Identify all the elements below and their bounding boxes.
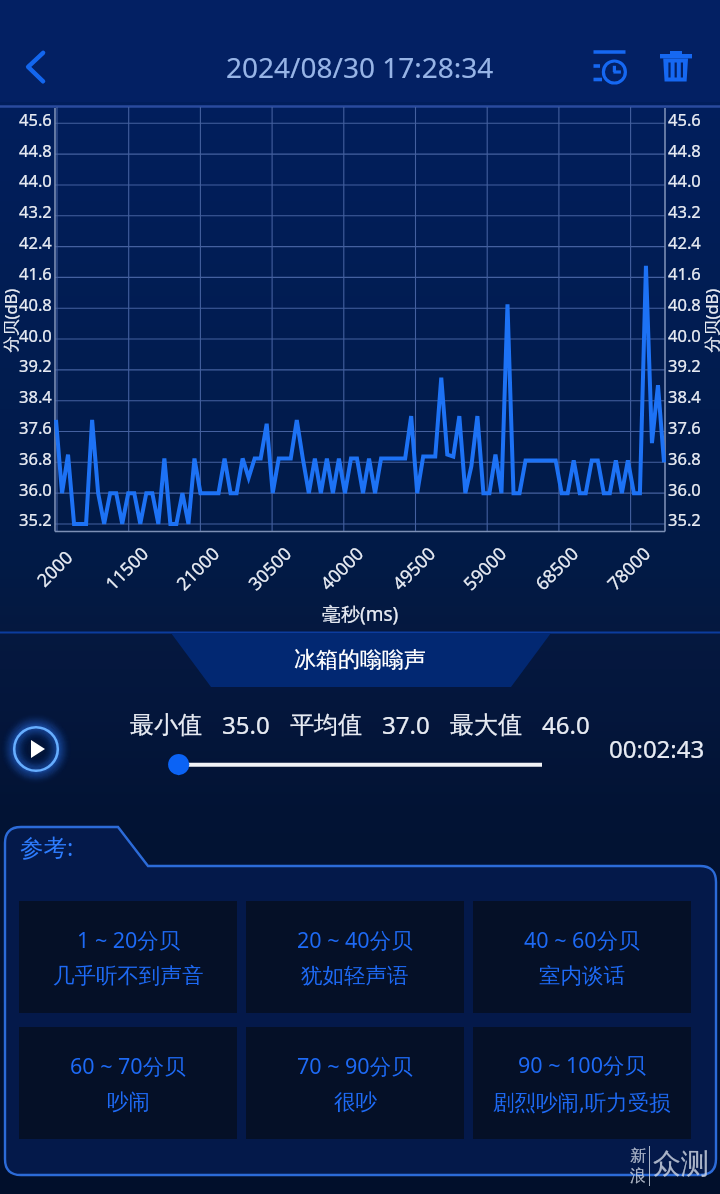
- button[interactable]: Play: [13, 725, 59, 771]
- staticText: 毫秒(ms): [322, 601, 399, 627]
- staticText: 35.0: [222, 708, 270, 741]
- staticText: 40 ~ 60分贝: [524, 925, 640, 954]
- staticText: 60 ~ 70分贝: [70, 1051, 186, 1080]
- button[interactable]: 40 ~ 60分贝: [473, 901, 691, 1013]
- staticText: 43.2: [19, 200, 52, 222]
- staticText: 2024/08/30 17:28:34: [226, 48, 494, 86]
- staticText: 39.2: [668, 354, 701, 376]
- button[interactable]: 20 ~ 40分贝: [246, 901, 464, 1013]
- staticText: 41.6: [668, 262, 701, 284]
- staticText: 44.0: [19, 169, 52, 191]
- staticText: 46.0: [542, 708, 590, 741]
- staticText: 49500: [387, 541, 441, 596]
- button[interactable]: Back: [8, 39, 64, 95]
- staticText: 44.8: [668, 139, 701, 161]
- button[interactable]: 1 ~ 20分贝: [19, 901, 237, 1013]
- staticText: 38.4: [19, 385, 52, 407]
- staticText: 36.0: [668, 478, 701, 500]
- button[interactable]: 60 ~ 70分贝: [19, 1027, 237, 1139]
- staticText: 犹如轻声语: [301, 962, 409, 989]
- staticText: 41.6: [19, 262, 52, 284]
- staticText: 30500: [243, 541, 297, 596]
- staticText: 78000: [602, 541, 656, 596]
- staticText: 吵闹: [107, 1088, 150, 1115]
- staticText: 11500: [100, 541, 154, 596]
- staticText: 90 ~ 100分贝: [518, 1050, 646, 1079]
- staticText: 36.0: [19, 478, 52, 500]
- staticText: 37.6: [668, 416, 701, 438]
- staticText: 2000: [31, 545, 79, 592]
- staticText: 40.8: [19, 293, 52, 315]
- staticText: 最小值: [130, 710, 202, 740]
- staticText: 40.0: [668, 324, 701, 346]
- staticText: 42.4: [668, 231, 701, 253]
- staticText: 39.2: [19, 354, 52, 376]
- staticText: 室内谈话: [539, 962, 625, 989]
- staticText: 00:02:43: [609, 732, 705, 765]
- staticText: 40.0: [19, 324, 52, 346]
- staticText: 70 ~ 90分贝: [297, 1051, 413, 1080]
- staticText: 43.2: [668, 200, 701, 222]
- staticText: 浪: [630, 1166, 646, 1186]
- button[interactable]: Delete: [645, 35, 707, 97]
- staticText: 45.6: [19, 108, 52, 130]
- staticText: 平均值: [290, 710, 362, 740]
- staticText: 几乎听不到声音: [53, 962, 204, 989]
- staticText: 20 ~ 40分贝: [297, 925, 413, 954]
- button[interactable]: 70 ~ 90分贝: [246, 1027, 464, 1139]
- staticText: 1 ~ 20分贝: [77, 925, 181, 954]
- staticText: 37.0: [382, 708, 430, 741]
- staticText: 新: [630, 1146, 646, 1166]
- staticText: 21000: [171, 541, 225, 596]
- staticText: 37.6: [19, 416, 52, 438]
- staticText: 44.8: [19, 139, 52, 161]
- staticText: 剧烈吵闹,听力受损: [493, 1087, 671, 1116]
- staticText: 最大值: [450, 710, 522, 740]
- staticText: 38.4: [668, 385, 701, 407]
- button[interactable]: 90 ~ 100分贝: [473, 1027, 691, 1139]
- staticText: 45.6: [668, 108, 701, 130]
- staticText: 分贝(dB): [699, 288, 720, 352]
- staticText: 冰箱的嗡嗡声: [294, 646, 426, 674]
- staticText: 42.4: [19, 231, 52, 253]
- staticText: 40.8: [668, 293, 701, 315]
- staticText: 40000: [315, 541, 369, 596]
- staticText: 44.0: [668, 169, 701, 191]
- staticText: 36.8: [668, 447, 701, 469]
- staticText: 35.2: [19, 508, 52, 530]
- staticText: 36.8: [19, 447, 52, 469]
- staticText: 59000: [458, 541, 512, 596]
- staticText: 众测: [653, 1146, 709, 1181]
- staticText: 很吵: [334, 1088, 377, 1115]
- staticText: 35.2: [668, 508, 701, 530]
- staticText: 参考:: [20, 831, 74, 863]
- staticText: 68500: [530, 541, 584, 596]
- staticText: 分贝(dB): [0, 288, 21, 352]
- button[interactable]: History: [578, 35, 640, 97]
